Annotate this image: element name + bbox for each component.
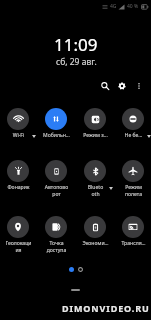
staticText: сб, 29 авг. [56, 56, 97, 68]
staticText: DIMONVIDEO.RU [62, 302, 150, 314]
button[interactable]: Не бе… [114, 108, 151, 139]
staticText: Трансля… [120, 240, 147, 247]
button[interactable]: Режим полета [114, 160, 151, 197]
staticText: Мобильн… [43, 132, 70, 139]
staticText: 40 % [127, 3, 139, 10]
button[interactable]: Settings [114, 78, 129, 93]
button[interactable]: Экономи… [76, 216, 114, 247]
staticText: Режим з… [82, 132, 109, 139]
staticText: Не бе… [120, 132, 147, 139]
staticText: Фонарик [5, 184, 32, 191]
staticText: Автопово рот [43, 184, 70, 197]
button[interactable]: Точка доступа [37, 216, 75, 253]
button[interactable]: Search [97, 78, 112, 93]
staticText: Режим полета [120, 184, 147, 197]
button[interactable]: Геолокаци ия [0, 216, 37, 253]
button[interactable]: Режим з… [76, 108, 114, 139]
button[interactable]: Wi-Fi [0, 108, 37, 139]
staticText: Wi-Fi [5, 132, 32, 139]
button[interactable]: Мобильн… [37, 108, 75, 139]
button[interactable]: Фонарик [0, 160, 37, 191]
button[interactable]: More options [131, 78, 146, 93]
staticText: Экономи… [82, 240, 109, 247]
staticText: Геолокаци ия [5, 240, 32, 253]
button[interactable]: Автопово рот [37, 160, 75, 197]
staticText: Точка доступа [43, 240, 70, 253]
staticText: 4G [110, 3, 117, 10]
button[interactable]: Трансля… [114, 216, 151, 247]
button[interactable]: Blueto oth [76, 160, 114, 197]
staticText: Blueto oth [82, 184, 109, 197]
staticText: 11:09 [54, 33, 98, 56]
